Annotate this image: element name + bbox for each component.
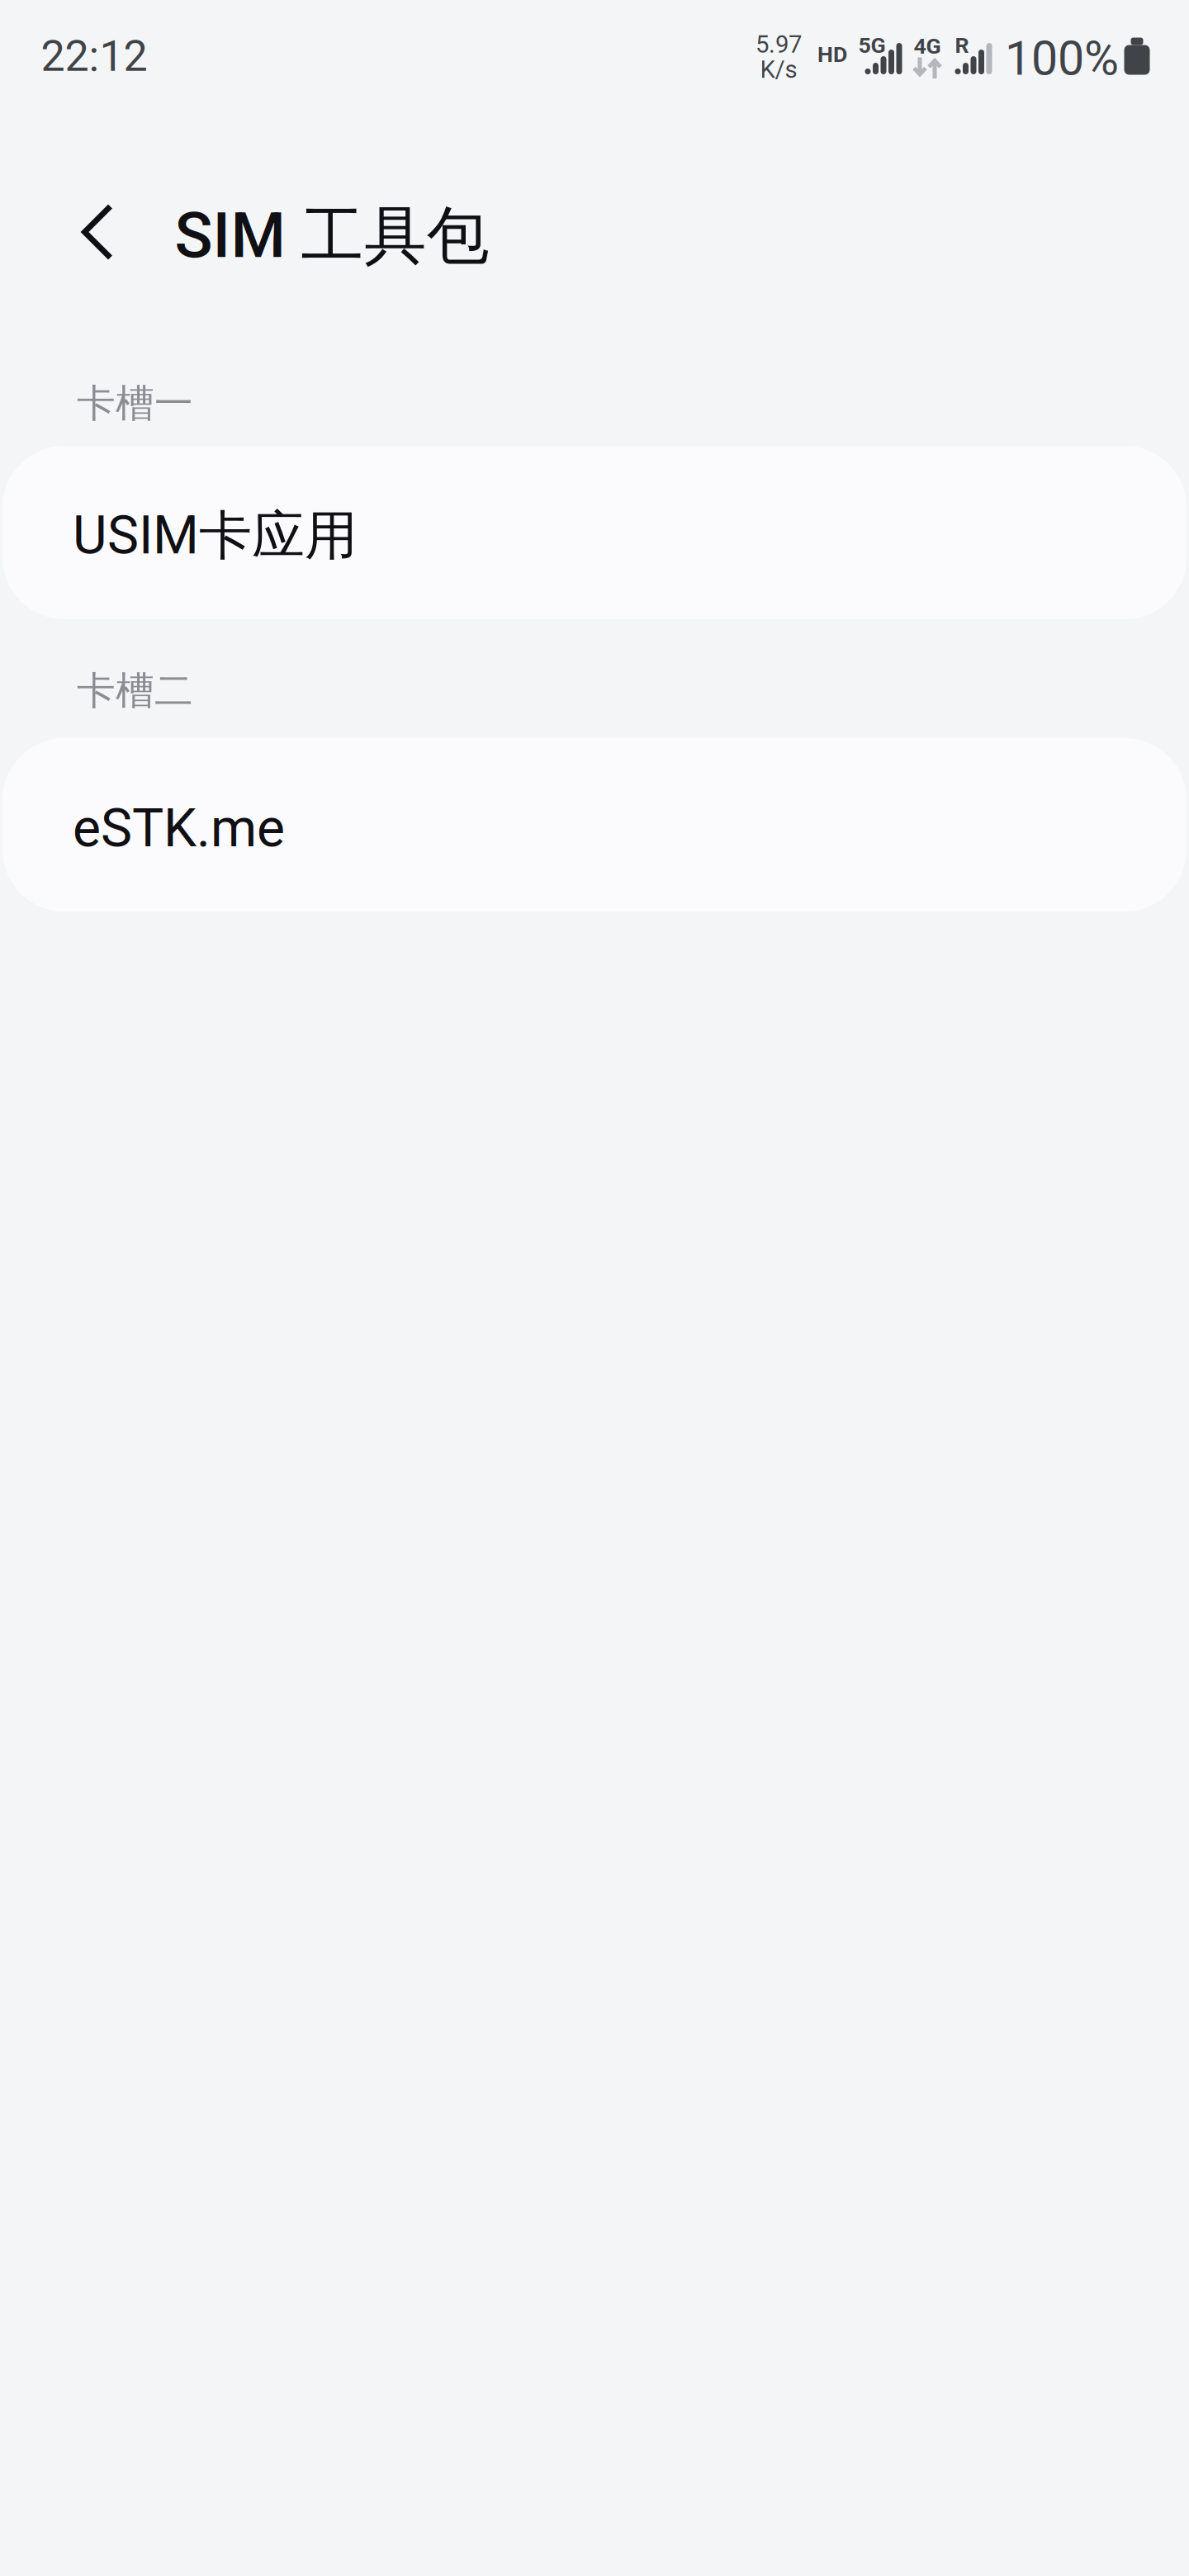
staticText: K/s — [760, 55, 797, 84]
button[interactable]: Back — [36, 170, 159, 294]
staticText: 4G — [914, 33, 941, 59]
staticText: 5.97 — [756, 30, 802, 59]
staticText: 卡槽一 — [77, 379, 193, 428]
staticText: 卡槽二 — [77, 666, 193, 715]
staticText: R — [955, 33, 969, 58]
staticText: HD — [817, 42, 847, 67]
staticText: 5G — [858, 33, 886, 58]
staticText: 100% — [1005, 31, 1119, 86]
staticText: SIM 工具包 — [175, 197, 489, 276]
staticText: 22:12 — [41, 31, 147, 81]
staticText: eSTK.me — [73, 797, 285, 859]
button[interactable]: eSTK.me — [2, 738, 1187, 912]
staticText: USIM卡应用 — [73, 503, 358, 569]
button[interactable]: USIM卡应用 — [2, 446, 1187, 619]
